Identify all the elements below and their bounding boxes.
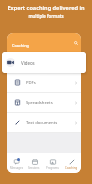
- button[interactable]: Search: [71, 38, 80, 47]
- button[interactable]: Text documents: [7, 113, 81, 133]
- button[interactable]: Coaching: [62, 153, 81, 173]
- staticText: Videos: [21, 60, 35, 66]
- staticText: PDFs: [26, 80, 36, 86]
- button[interactable]: PDFs: [7, 73, 81, 93]
- button[interactable]: Messages: [7, 153, 25, 173]
- staticText: Sessions: [28, 166, 40, 170]
- button[interactable]: Spreadsheets: [7, 93, 81, 113]
- staticText: multiple formats: [28, 13, 64, 19]
- staticText: Spreadsheets: [26, 100, 53, 106]
- button[interactable]: Sessions: [25, 153, 43, 173]
- staticText: Coaching: [12, 43, 29, 48]
- button[interactable]: Programs: [43, 153, 62, 173]
- staticText: Coaching: [65, 166, 78, 170]
- staticText: Text documents: [26, 120, 58, 126]
- button[interactable]: Videos: [2, 52, 86, 73]
- staticText: Programs: [46, 166, 59, 170]
- staticText: Messages: [10, 166, 23, 170]
- staticText: Expert coaching delivered in: [7, 4, 85, 12]
